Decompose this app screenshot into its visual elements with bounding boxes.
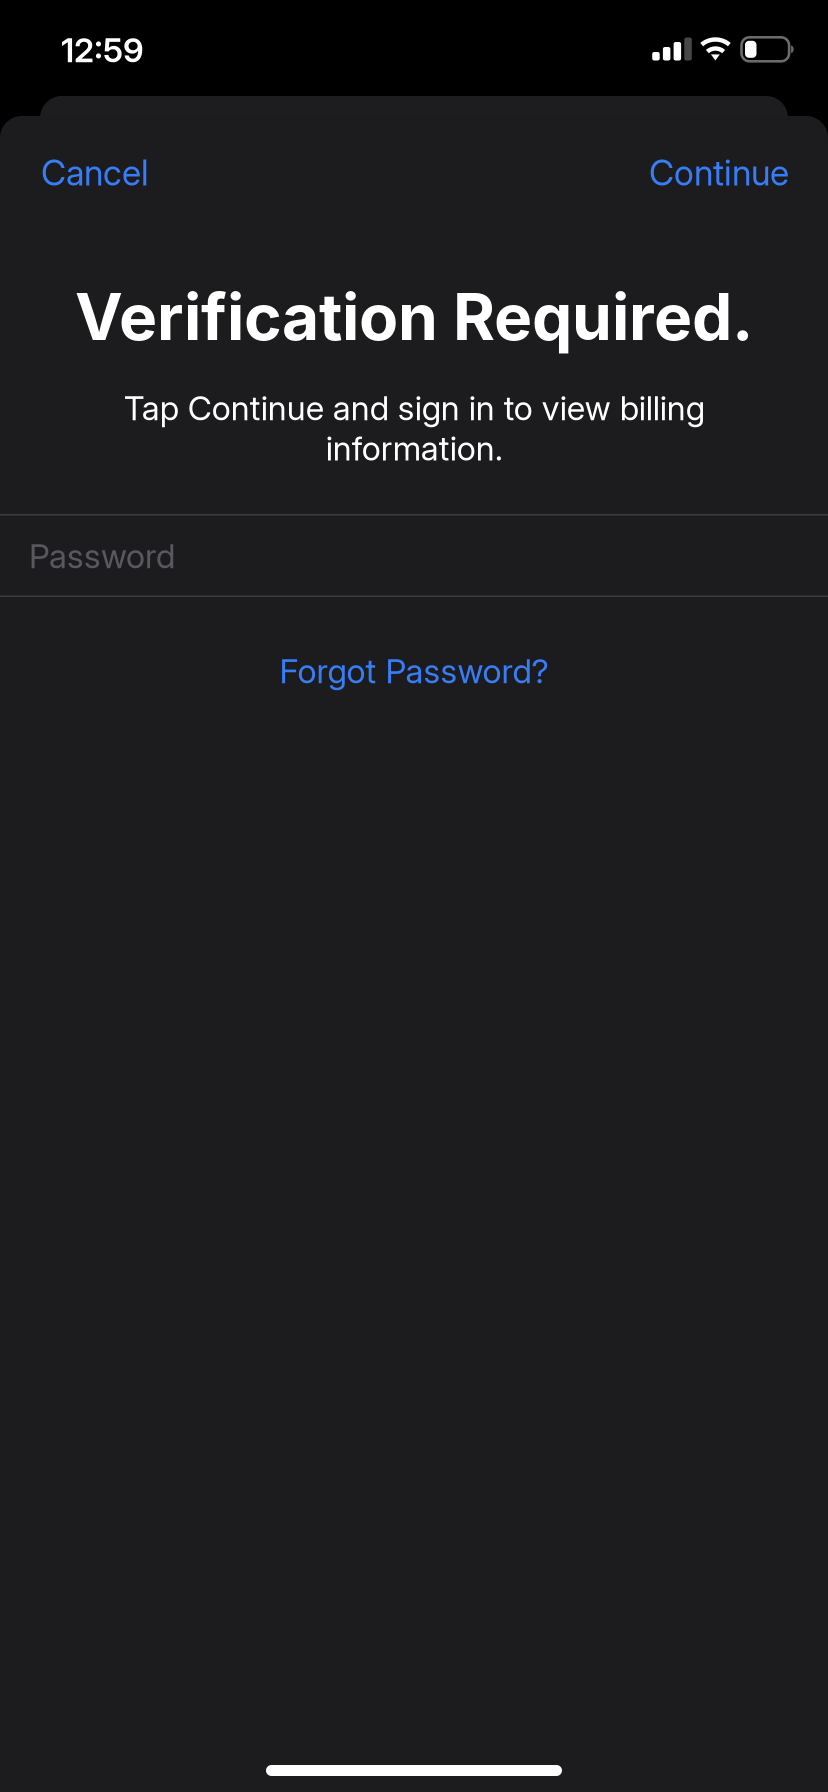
staticText: Continue <box>649 152 789 194</box>
staticText: Forgot Password? <box>279 651 548 691</box>
staticText: Password <box>29 536 175 576</box>
staticText: Tap Continue and sign in to view billing… <box>123 388 704 469</box>
button[interactable]: Cancel <box>41 146 189 200</box>
staticText: Cancel <box>41 152 149 194</box>
button[interactable]: Forgot Password? <box>0 638 828 704</box>
button[interactable]: Continue <box>599 146 789 200</box>
staticText: 12:59 <box>61 30 144 70</box>
staticText: Verification Required. <box>75 278 753 355</box>
secureTextField[interactable]: Password <box>0 514 828 597</box>
